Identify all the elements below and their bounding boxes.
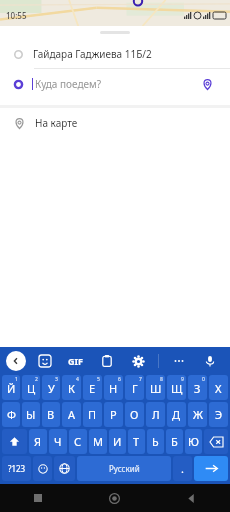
staticText: 0 [202, 376, 205, 383]
button[interactable]: Л [146, 402, 165, 427]
button[interactable]: Ф [2, 402, 20, 427]
staticText: 6 [118, 376, 121, 383]
button[interactable]: Ж [188, 402, 207, 427]
staticText: На карте [35, 116, 78, 130]
button[interactable]: Ч [49, 429, 67, 454]
button[interactable]: Й [2, 375, 20, 400]
staticText: Ю [188, 434, 199, 449]
staticText: Куда поедем? [35, 77, 198, 91]
button[interactable]: Ввод [194, 456, 228, 481]
button[interactable]: Голосовой ввод [199, 350, 221, 372]
staticText: Д [172, 407, 181, 422]
button[interactable]: Г [125, 375, 144, 400]
button[interactable]: Недавние [0, 484, 76, 512]
staticText: GIF [68, 355, 83, 367]
staticText: Ж [193, 407, 203, 422]
button[interactable]: З [188, 375, 207, 400]
staticText: . [181, 461, 184, 476]
button[interactable]: Русский [77, 456, 171, 481]
staticText: Н [109, 381, 118, 396]
staticText: Л [152, 407, 160, 422]
button[interactable]: Э [209, 402, 228, 427]
button[interactable]: Гайдара Гаджиева 11Б/2 [0, 40, 230, 68]
staticText: 7 [139, 376, 142, 383]
button[interactable]: Выбрать на карте [198, 75, 216, 93]
button[interactable]: Ц [22, 375, 40, 400]
staticText: Русский [109, 463, 140, 474]
button[interactable]: Сменить язык [54, 456, 75, 481]
staticText: С [74, 434, 82, 449]
button[interactable]: ?123 [2, 456, 31, 481]
button[interactable]: Назад [6, 351, 26, 371]
staticText: О [130, 407, 139, 422]
button[interactable]: Буфер обмена [96, 350, 118, 372]
staticText: Т [133, 434, 140, 449]
button[interactable]: Настройки [127, 350, 149, 372]
staticText: 1 [15, 376, 18, 383]
button[interactable]: Стикеры [34, 350, 56, 372]
staticText: 4 [76, 376, 79, 383]
staticText: Ц [27, 381, 36, 396]
button[interactable]: Ю [185, 429, 202, 454]
button[interactable]: Н [104, 375, 123, 400]
staticText: Ы [26, 407, 36, 422]
button[interactable]: Т [128, 429, 145, 454]
button[interactable]: С [69, 429, 87, 454]
button[interactable]: Ы [22, 402, 40, 427]
staticText: ?123 [8, 463, 26, 474]
staticText: Э [215, 407, 223, 422]
staticText: З [194, 381, 201, 396]
staticText: 5 [97, 376, 100, 383]
button[interactable]: Х [209, 375, 228, 400]
staticText: М [93, 434, 103, 449]
staticText: К [68, 381, 75, 396]
staticText: 9 [181, 376, 184, 383]
staticText: Р [110, 407, 117, 422]
staticText: Е [89, 381, 96, 396]
button[interactable]: Р [104, 402, 123, 427]
staticText: 10:55 [6, 10, 27, 21]
button[interactable]: П [83, 402, 102, 427]
staticText: Гайдара Гаджиева 11Б/2 [33, 47, 152, 61]
button[interactable]: Щ [167, 375, 186, 400]
button[interactable]: Д [167, 402, 186, 427]
staticText: Ш [150, 381, 162, 396]
button[interactable]: Е [83, 375, 102, 400]
staticText: Й [7, 381, 16, 396]
staticText: 2 [35, 376, 38, 383]
staticText: А [68, 407, 76, 422]
staticText: Щ [171, 381, 183, 396]
button[interactable]: Я [29, 429, 47, 454]
button[interactable]: М [89, 429, 107, 454]
button[interactable]: Ш [146, 375, 165, 400]
button[interactable]: У [42, 375, 60, 400]
staticText: Ь [152, 434, 159, 449]
staticText: Б [171, 434, 178, 449]
button[interactable]: . [173, 456, 192, 481]
button[interactable]: GIF [64, 351, 87, 371]
staticText: 8 [160, 376, 163, 383]
staticText: У [48, 381, 55, 396]
button[interactable]: А [62, 402, 81, 427]
button[interactable]: Эмодзи [33, 456, 52, 481]
staticText: И [113, 434, 122, 449]
button[interactable]: К [62, 375, 81, 400]
button[interactable]: О [125, 402, 144, 427]
button[interactable]: Куда поедем? [0, 69, 230, 99]
button[interactable]: Главный экран [76, 484, 153, 512]
staticText: Ф [7, 407, 16, 422]
button[interactable]: Удалить [204, 429, 228, 454]
staticText: В [47, 407, 55, 422]
staticText: 3 [55, 376, 58, 383]
button[interactable]: Ещё [168, 350, 190, 372]
staticText: П [88, 407, 97, 422]
button[interactable]: Shift [2, 429, 27, 454]
staticText: Ч [54, 434, 62, 449]
button[interactable]: На карте [0, 108, 230, 138]
button[interactable]: Ь [147, 429, 164, 454]
staticText: Я [34, 434, 42, 449]
button[interactable]: И [109, 429, 126, 454]
button[interactable]: В [42, 402, 60, 427]
button[interactable]: Назад [153, 484, 230, 512]
button[interactable]: Б [166, 429, 183, 454]
